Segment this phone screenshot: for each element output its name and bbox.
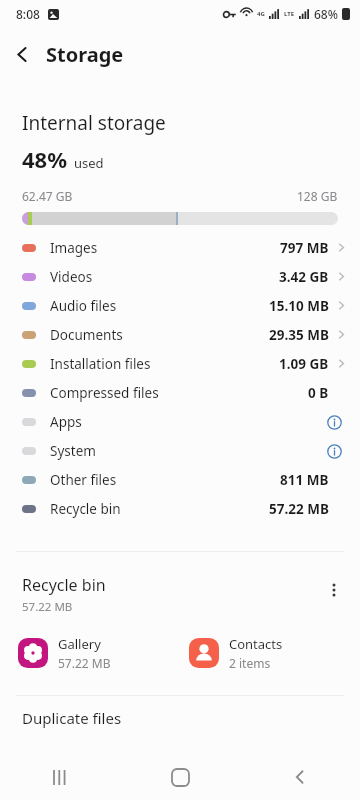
button[interactable]: Documents	[0, 320, 360, 349]
staticText: Apps	[50, 413, 82, 431]
button[interactable]: Info about Apps	[322, 410, 346, 434]
staticText: Compressed files	[50, 384, 159, 402]
staticText: LTE	[284, 10, 295, 18]
button[interactable]: Home	[120, 754, 240, 800]
button[interactable]: Recents	[0, 754, 120, 800]
staticText: Gallery	[58, 635, 101, 653]
staticText: 57.22 MB	[22, 599, 73, 615]
staticText: 29.35 MB	[269, 326, 329, 344]
button[interactable]: Audio files	[0, 291, 360, 320]
staticText: 128 GB	[297, 188, 338, 204]
staticText: Storage	[46, 41, 124, 68]
staticText: 797 MB	[280, 239, 329, 257]
button[interactable]: Installation files	[0, 349, 360, 378]
staticText: 4G	[257, 10, 265, 18]
button[interactable]: Images	[0, 233, 360, 262]
staticText: Installation files	[50, 355, 151, 373]
staticText: Audio files	[50, 297, 117, 315]
staticText: 8:08	[16, 6, 40, 22]
staticText: 62.47 GB	[22, 188, 73, 204]
staticText: System	[50, 442, 96, 460]
staticText: Other files	[50, 471, 117, 489]
staticText: Contacts	[229, 635, 283, 653]
staticText: 15.10 MB	[269, 297, 329, 315]
staticText: 0 B	[308, 384, 329, 402]
button[interactable]: Back	[0, 32, 44, 76]
staticText: Duplicate files	[22, 708, 122, 728]
button[interactable]: Other files	[0, 465, 360, 494]
staticText: 68%	[314, 6, 338, 22]
button[interactable]: Contacts	[189, 633, 360, 673]
staticText: Recycle bin	[22, 574, 106, 596]
button[interactable]: Recycle bin	[22, 574, 106, 615]
staticText: Videos	[50, 268, 93, 286]
button[interactable]: Info about System	[322, 439, 346, 463]
staticText: Internal storage	[22, 110, 166, 136]
button[interactable]: Recycle bin	[0, 494, 360, 523]
button[interactable]: Apps	[0, 407, 360, 436]
staticText: 3.42 GB	[279, 268, 329, 286]
staticText: 1.09 GB	[279, 355, 329, 373]
staticText: Recycle bin	[50, 500, 121, 518]
staticText: Documents	[50, 326, 123, 344]
button[interactable]: More options	[318, 574, 350, 606]
staticText: used	[74, 154, 104, 172]
staticText: 57.22 MB	[58, 655, 111, 671]
staticText: 57.22 MB	[269, 500, 329, 518]
button[interactable]: Gallery	[18, 633, 189, 673]
button[interactable]: Videos	[0, 262, 360, 291]
staticText: 48%	[22, 144, 68, 174]
button[interactable]: System	[0, 436, 360, 465]
button[interactable]: Back	[240, 754, 360, 800]
staticText: Images	[50, 239, 98, 257]
staticText: 811 MB	[280, 471, 329, 489]
button[interactable]: Compressed files	[0, 378, 360, 407]
staticText: 2 items	[229, 655, 271, 671]
